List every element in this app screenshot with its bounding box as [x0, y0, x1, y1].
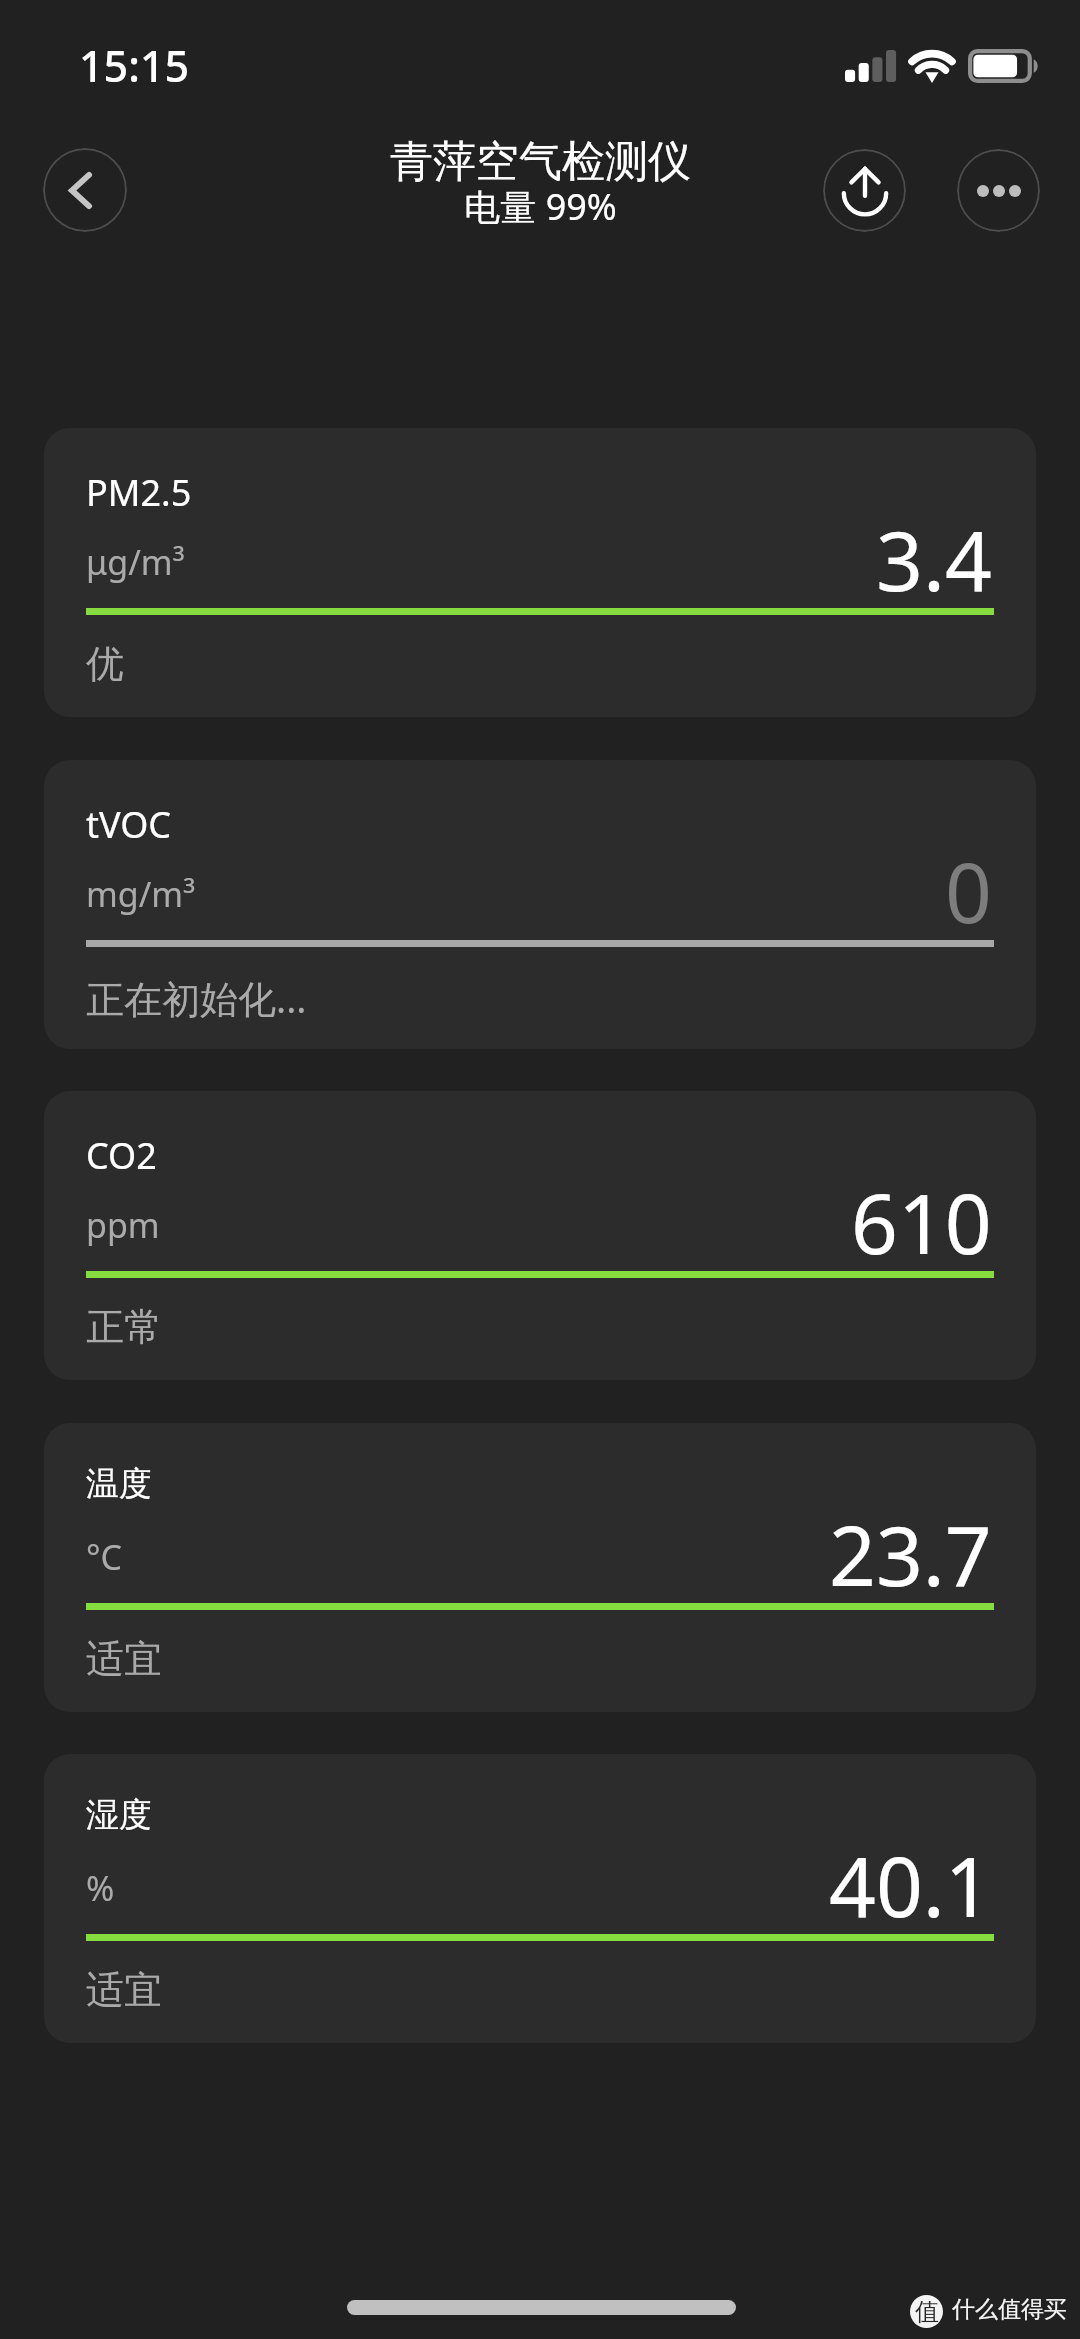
staticText: 正常: [86, 1303, 162, 1351]
staticText: 温度: [86, 1463, 152, 1505]
staticText: 40.1: [829, 1829, 992, 1941]
staticText: 15:15: [79, 36, 190, 95]
staticText: 什么值得买: [952, 2295, 1067, 2324]
staticText: 适宜: [86, 1635, 162, 1683]
staticText: 适宜: [86, 1966, 162, 2014]
staticText: %: [86, 1865, 115, 1911]
button[interactable]: CO2: [44, 1091, 1036, 1380]
button[interactable]: Back: [43, 148, 127, 232]
staticText: tVOC: [86, 800, 172, 849]
button[interactable]: tVOC: [44, 760, 1036, 1049]
staticText: mg/m³: [86, 871, 196, 917]
button[interactable]: 温度: [44, 1423, 1036, 1712]
staticText: μg/m³: [86, 539, 185, 585]
staticText: PM2.5: [86, 468, 192, 517]
staticText: 值: [915, 2297, 939, 2327]
staticText: CO2: [86, 1131, 157, 1180]
staticText: 610: [851, 1166, 992, 1278]
staticText: 正在初始化...: [86, 972, 307, 1024]
staticText: 湿度: [86, 1794, 152, 1836]
staticText: 青萍空气检测仪: [390, 135, 691, 189]
staticText: 优: [86, 640, 124, 688]
staticText: 0: [945, 835, 992, 947]
button[interactable]: Share: [823, 149, 906, 232]
staticText: 电量 99%: [464, 182, 617, 231]
staticText: ppm: [86, 1202, 160, 1248]
staticText: °C: [86, 1534, 123, 1580]
staticText: 3.4: [876, 503, 992, 615]
staticText: 23.7: [829, 1498, 992, 1610]
button[interactable]: 湿度: [44, 1754, 1036, 2043]
button[interactable]: More options: [957, 149, 1040, 232]
button[interactable]: PM2.5: [44, 428, 1036, 717]
